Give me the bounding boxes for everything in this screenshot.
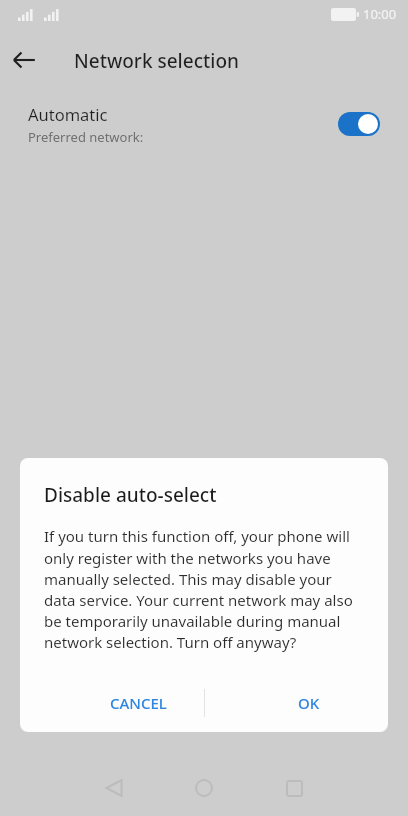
button[interactable]: CANCEL: [82, 682, 194, 724]
button[interactable]: Recent apps: [270, 764, 318, 812]
staticText: 10:00: [363, 5, 397, 23]
staticText: Network selection: [74, 48, 239, 74]
staticText: OK: [298, 693, 320, 713]
button[interactable]: OK: [252, 682, 366, 724]
staticText: Automatic: [28, 103, 108, 125]
staticText: If you turn this function off, your phon…: [44, 526, 366, 652]
button[interactable]: Home: [180, 764, 228, 812]
button[interactable]: Automatic: [0, 96, 408, 152]
staticText: CANCEL: [110, 693, 167, 713]
staticText: Disable auto-select: [44, 482, 217, 508]
button[interactable]: Back: [90, 764, 138, 812]
button[interactable]: Back: [0, 36, 48, 84]
staticText: Preferred network:: [28, 128, 144, 146]
